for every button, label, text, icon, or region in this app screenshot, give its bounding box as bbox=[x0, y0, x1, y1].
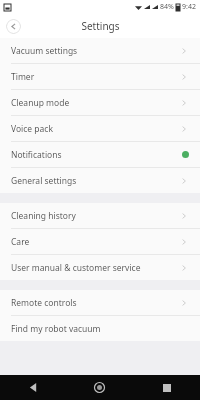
button[interactable]: Home bbox=[66, 375, 133, 400]
staticText: Cleanup mode bbox=[11, 97, 70, 109]
staticText: Timer bbox=[11, 71, 35, 83]
staticText: 9:42 bbox=[182, 2, 196, 12]
staticText: Find my robot vacuum bbox=[11, 323, 101, 335]
button[interactable]: Back bbox=[0, 375, 66, 400]
staticText: 84% bbox=[160, 2, 174, 12]
staticText: Notifications bbox=[11, 149, 62, 161]
button[interactable]: Notifications bbox=[0, 142, 200, 168]
button[interactable]: Recent apps bbox=[133, 375, 200, 400]
staticText: Cleaning history bbox=[11, 210, 76, 222]
button[interactable]: Find my robot vacuum bbox=[0, 316, 200, 341]
button[interactable]: User manual & customer service bbox=[0, 255, 200, 280]
button[interactable]: Cleaning history bbox=[0, 203, 200, 229]
button[interactable]: Vacuum settings bbox=[0, 38, 200, 64]
staticText: Vacuum settings bbox=[11, 45, 78, 57]
button[interactable]: General settings bbox=[0, 168, 200, 193]
staticText: General settings bbox=[11, 175, 77, 187]
button[interactable]: Care bbox=[0, 229, 200, 255]
staticText: Voice pack bbox=[11, 123, 53, 135]
button[interactable]: Remote controls bbox=[0, 290, 200, 316]
button[interactable]: Voice pack bbox=[0, 116, 200, 142]
staticText: User manual & customer service bbox=[11, 262, 141, 274]
button[interactable]: Timer bbox=[0, 64, 200, 90]
staticText: Settings bbox=[81, 19, 120, 33]
staticText: Remote controls bbox=[11, 297, 77, 309]
staticText: Care bbox=[11, 236, 30, 248]
button[interactable]: Back bbox=[6, 19, 21, 34]
button[interactable]: Cleanup mode bbox=[0, 90, 200, 116]
